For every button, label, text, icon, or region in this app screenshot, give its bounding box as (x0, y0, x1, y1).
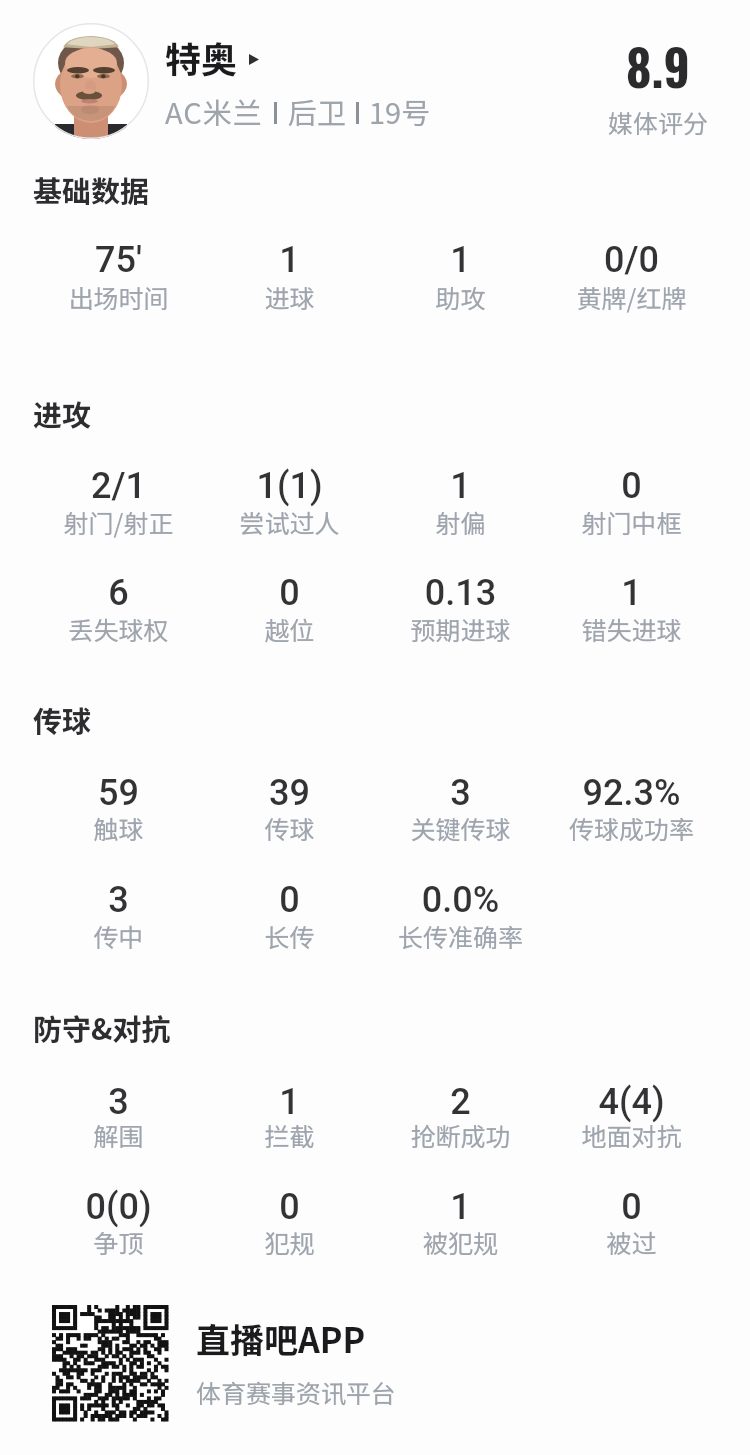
button[interactable]: 92.3% (546, 772, 717, 847)
staticText: 越位 (204, 611, 375, 647)
staticText: 0 (204, 879, 375, 921)
staticText: 0 (546, 1186, 717, 1228)
staticText: 92.3% (546, 772, 717, 814)
staticText: 0 (204, 572, 375, 614)
button[interactable]: 0.13 (375, 572, 546, 648)
staticText: 0 (204, 1186, 375, 1228)
staticText: 预期进球 (375, 611, 546, 647)
button[interactable]: 59 (33, 772, 204, 847)
staticText: 助攻 (375, 279, 546, 315)
staticText: 2 (375, 1081, 546, 1123)
staticText: 争顶 (33, 1224, 204, 1260)
staticText: 尝试过人 (204, 504, 375, 540)
staticText: 1 (375, 239, 546, 281)
staticText: 传球 (33, 698, 92, 740)
button[interactable]: 0/0 (546, 239, 717, 316)
button[interactable]: 1 (375, 1186, 546, 1261)
staticText: 6 (33, 572, 204, 614)
staticText: 射偏 (375, 504, 546, 540)
button[interactable]: 3 (33, 879, 204, 955)
staticText: 0 (546, 465, 717, 507)
staticText: 59 (33, 772, 204, 814)
button[interactable]: 0 (204, 572, 375, 648)
staticText: 抢断成功 (375, 1117, 546, 1153)
staticText: 丢失球权 (33, 611, 204, 647)
staticText: 3 (375, 772, 546, 814)
button[interactable]: 75' (33, 239, 204, 316)
staticText: 射门中框 (546, 504, 717, 540)
staticText: 传中 (33, 918, 204, 954)
button[interactable]: 0 (546, 465, 717, 541)
button[interactable] (0, 1290, 750, 1440)
staticText: 3 (33, 1081, 204, 1123)
staticText: 媒体评分 (578, 104, 738, 140)
staticText: 体育赛事资讯平台 (196, 1374, 397, 1410)
staticText: 地面对抗 (546, 1117, 717, 1153)
staticText: 0.13 (375, 572, 546, 614)
button[interactable]: 0 (204, 1186, 375, 1261)
button[interactable]: 39 (204, 772, 375, 847)
staticText: 特奥 (165, 31, 238, 83)
staticText: 75' (33, 239, 204, 281)
staticText: 2/1 (33, 465, 204, 507)
staticText: 拦截 (204, 1117, 375, 1153)
staticText: 被过 (546, 1224, 717, 1260)
staticText: 进攻 (33, 392, 92, 434)
staticText: 0/0 (546, 239, 717, 281)
staticText: 长传准确率 (375, 918, 546, 954)
button[interactable]: 1 (375, 239, 546, 316)
button[interactable]: 4(4) (546, 1081, 717, 1154)
staticText: 8.9 (578, 30, 738, 103)
staticText: 19号 (369, 90, 431, 132)
staticText: 触球 (33, 810, 204, 846)
staticText: 基础数据 (33, 168, 150, 210)
button[interactable]: Player photo (33, 23, 149, 139)
staticText: 黄牌/红牌 (546, 279, 717, 315)
staticText: 出场时间 (33, 279, 204, 315)
staticText: 4(4) (546, 1081, 717, 1123)
staticText: 被犯规 (375, 1224, 546, 1260)
staticText: 1(1) (204, 465, 375, 507)
button[interactable]: QR code to download the app (52, 1305, 168, 1421)
staticText: 0(0) (33, 1186, 204, 1228)
button[interactable]: 1 (204, 1081, 375, 1154)
staticText: 1 (375, 1186, 546, 1228)
button[interactable]: 0 (204, 879, 375, 955)
staticText: 1 (375, 465, 546, 507)
button[interactable]: 0 (546, 1186, 717, 1261)
button[interactable]: 3 (33, 1081, 204, 1154)
staticText: 传球 (204, 810, 375, 846)
staticText: 3 (33, 879, 204, 921)
button[interactable]: 0(0) (33, 1186, 204, 1261)
button[interactable]: 1 (375, 465, 546, 541)
staticText: 传球成功率 (546, 810, 717, 846)
staticText: 39 (204, 772, 375, 814)
staticText: 0.0% (375, 879, 546, 921)
staticText: 1 (204, 239, 375, 281)
staticText: AC米兰 (165, 90, 264, 132)
staticText: 直播吧APP (196, 1314, 366, 1363)
staticText: 后卫 (288, 90, 347, 132)
staticText: 射门/射正 (33, 504, 204, 540)
button[interactable]: 1(1) (204, 465, 375, 541)
staticText: 1 (204, 1081, 375, 1123)
button[interactable]: 2/1 (33, 465, 204, 541)
button[interactable]: 1 (546, 572, 717, 648)
staticText: 防守&对抗 (33, 1006, 171, 1048)
button[interactable]: 3 (375, 772, 546, 847)
staticText: 关键传球 (375, 810, 546, 846)
staticText: 长传 (204, 918, 375, 954)
button[interactable]: 2 (375, 1081, 546, 1154)
button[interactable]: 0.0% (375, 879, 546, 955)
staticText: 错失进球 (546, 611, 717, 647)
staticText: 1 (546, 572, 717, 614)
button[interactable]: 特奥 (165, 31, 264, 83)
button[interactable]: 6 (33, 572, 204, 648)
button[interactable]: 1 (204, 239, 375, 316)
staticText: 犯规 (204, 1224, 375, 1260)
staticText: 解围 (33, 1117, 204, 1153)
staticText: 进球 (204, 279, 375, 315)
